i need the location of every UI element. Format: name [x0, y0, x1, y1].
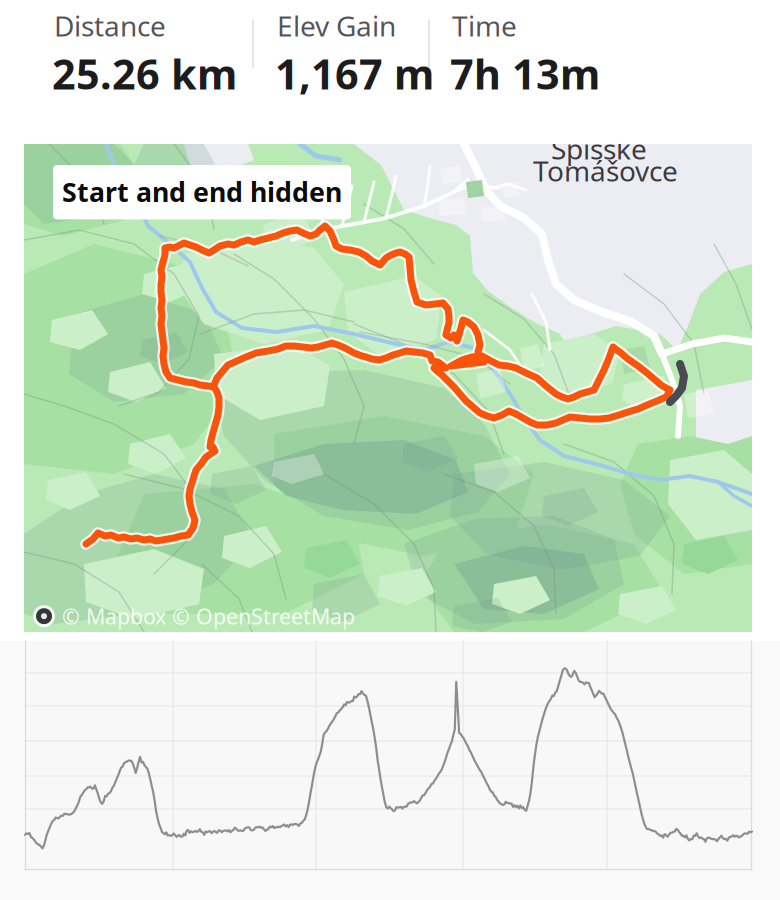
staticText: Distance	[54, 7, 166, 44]
staticText: Spišské	[551, 130, 647, 167]
staticText: Tomášovce	[533, 152, 678, 189]
staticText: Elev Gain	[277, 7, 396, 44]
staticText: Start and end hidden	[62, 174, 342, 209]
staticText: Time	[452, 7, 517, 44]
staticText: © Mapbox © OpenStreetMap	[62, 602, 355, 630]
staticText: 1,167 m	[275, 46, 434, 101]
staticText: 25.26 km	[52, 46, 237, 101]
staticText: 7h 13m	[450, 46, 600, 101]
